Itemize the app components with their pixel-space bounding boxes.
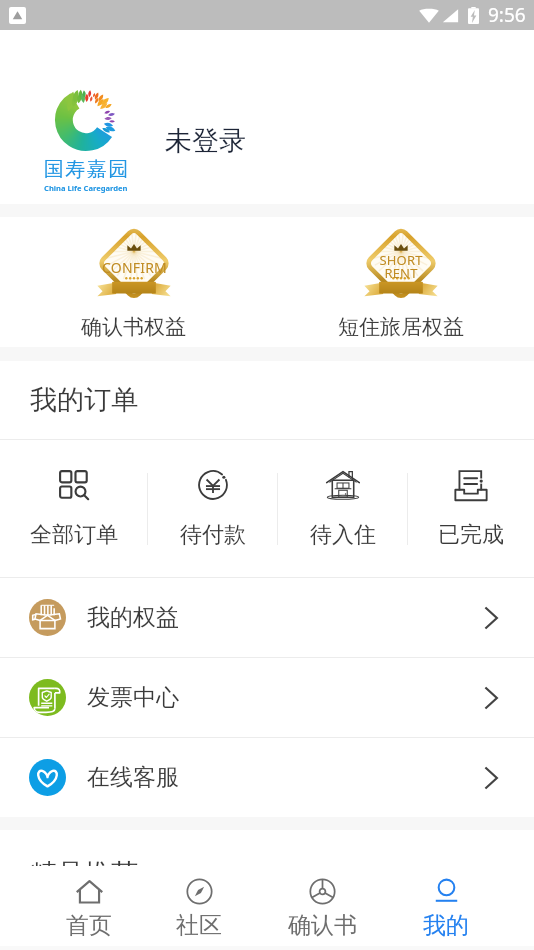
button[interactable]: 我的 bbox=[383, 866, 509, 950]
button[interactable]: CONFIRM bbox=[0, 229, 267, 340]
staticText: China Life Caregarden bbox=[44, 183, 128, 193]
staticText: CONFIRM bbox=[102, 258, 167, 277]
button[interactable]: SHORT RENT bbox=[267, 229, 534, 340]
staticText: 首页 bbox=[66, 911, 112, 940]
button[interactable]: 确认书 bbox=[261, 866, 383, 950]
button[interactable]: 首页 bbox=[25, 866, 153, 950]
staticText: 确认书权益 bbox=[81, 314, 186, 340]
staticText: 未登录 bbox=[165, 124, 246, 158]
staticText: 已完成 bbox=[438, 521, 504, 549]
staticText: 我的 bbox=[423, 911, 469, 940]
staticText: 国寿嘉园 bbox=[43, 157, 129, 182]
button[interactable]: 全部订单 bbox=[0, 468, 147, 549]
button[interactable]: 在线客服 bbox=[0, 738, 534, 817]
staticText: 短住旅居权益 bbox=[338, 314, 464, 340]
button[interactable]: 待付款 bbox=[148, 468, 277, 549]
button[interactable]: 发票中心 bbox=[0, 658, 534, 737]
staticText: 全部订单 bbox=[30, 521, 118, 549]
staticText: 9:56 bbox=[488, 2, 526, 28]
button[interactable]: 我的权益 bbox=[0, 578, 534, 657]
staticText: SHORT RENT bbox=[379, 251, 423, 282]
staticText: 确认书 bbox=[288, 911, 357, 940]
staticText: 待入住 bbox=[310, 521, 376, 549]
button[interactable]: 社区 bbox=[145, 866, 253, 950]
staticText: 社区 bbox=[176, 911, 222, 940]
staticText: 发票中心 bbox=[87, 683, 179, 712]
button[interactable]: 已完成 bbox=[408, 468, 534, 549]
staticText: 我的权益 bbox=[87, 603, 179, 632]
staticText: 我的订单 bbox=[30, 383, 138, 417]
staticText: 待付款 bbox=[180, 521, 246, 549]
staticText: 在线客服 bbox=[87, 763, 179, 792]
button[interactable]: 待入住 bbox=[278, 468, 407, 549]
staticText: 精品推荐 bbox=[30, 857, 138, 891]
